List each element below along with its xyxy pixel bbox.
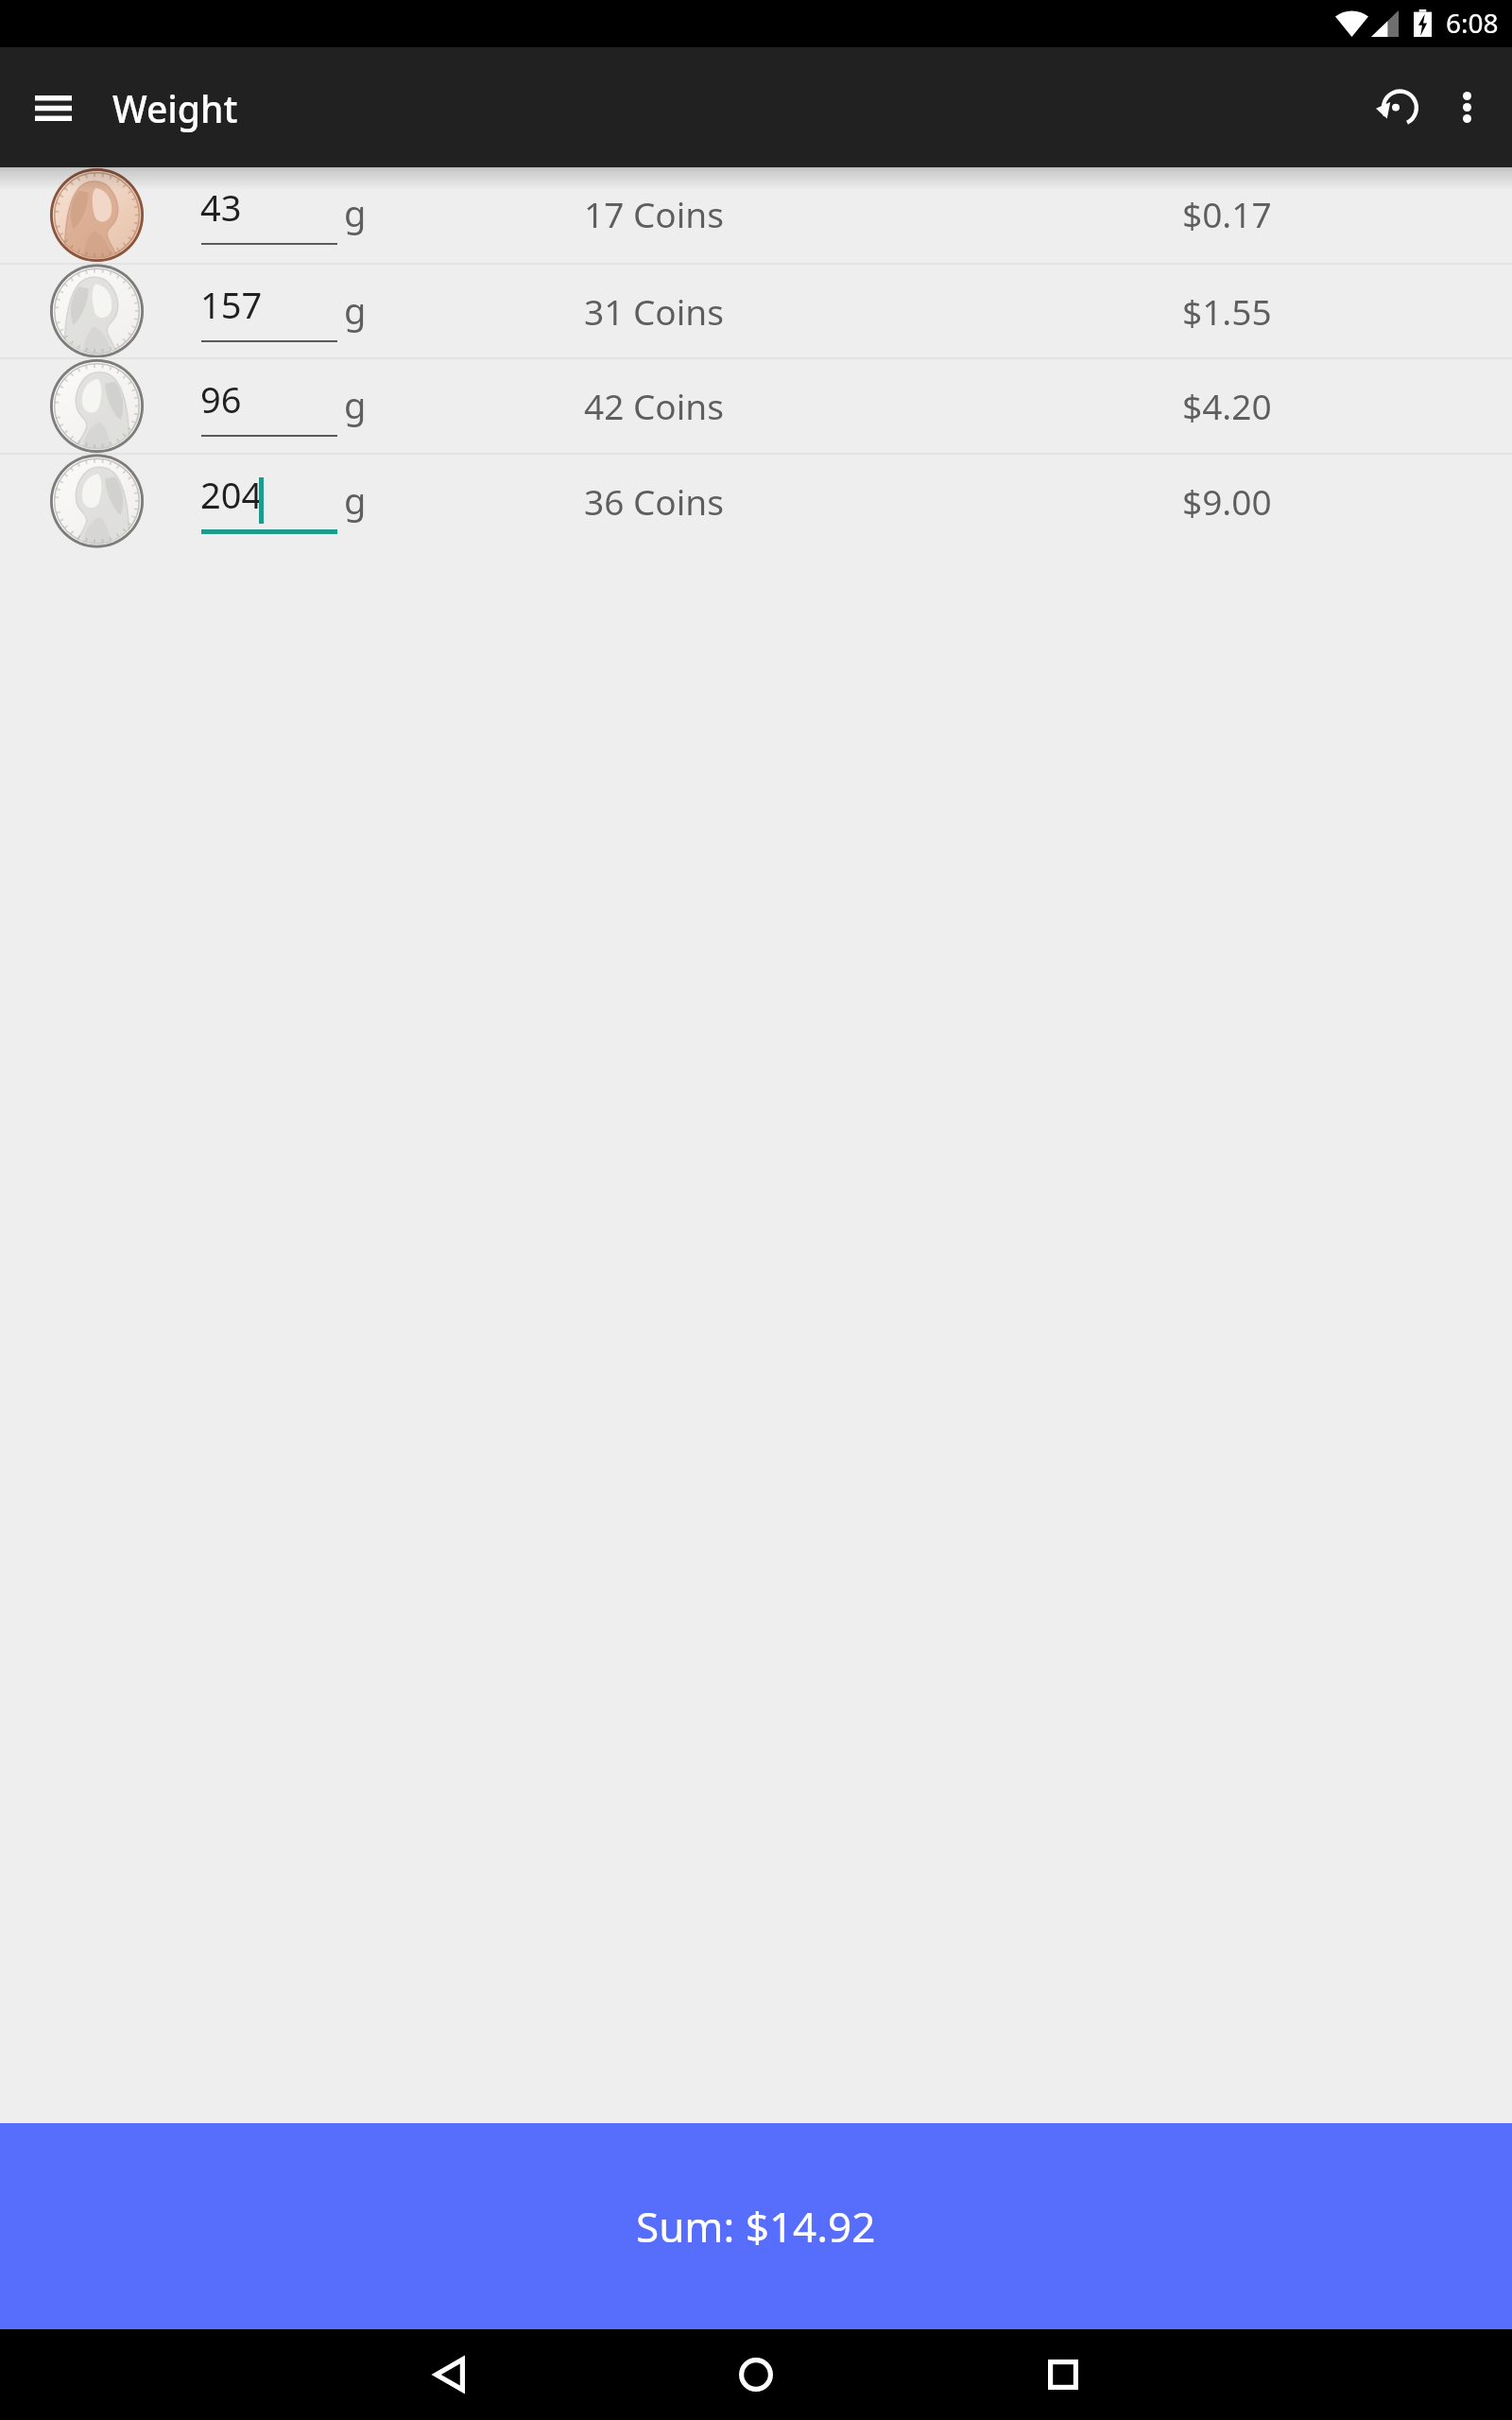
staticText: 204 <box>200 470 263 519</box>
staticText: $9.00 <box>1182 477 1272 525</box>
staticText: g <box>344 475 367 525</box>
staticText: 36 Coins <box>584 477 724 525</box>
staticText: g <box>344 188 367 237</box>
button[interactable]: 204 <box>0 455 1512 547</box>
staticText: 42 Coins <box>584 382 724 429</box>
staticText: 96 <box>200 374 242 423</box>
staticText: g <box>344 285 367 335</box>
button[interactable]: Sum: $14.92 <box>0 2123 1512 2329</box>
button[interactable]: Back <box>397 2329 501 2420</box>
button[interactable]: Recent apps <box>1011 2329 1115 2420</box>
button[interactable]: More options <box>1421 61 1512 153</box>
staticText: 157 <box>200 280 263 329</box>
button[interactable]: 157 <box>0 265 1512 357</box>
staticText: Sum: $14.92 <box>636 2198 876 2255</box>
staticText: 43 <box>200 182 242 232</box>
button[interactable]: Home <box>704 2329 808 2420</box>
staticText: $0.17 <box>1182 190 1272 237</box>
staticText: 31 Coins <box>584 287 724 335</box>
staticText: 6:08 <box>1446 5 1499 41</box>
staticText: $1.55 <box>1182 287 1272 335</box>
button[interactable]: Navigation menu <box>8 62 98 153</box>
staticText: g <box>344 380 367 429</box>
staticText: $4.20 <box>1182 382 1272 429</box>
button[interactable]: 96 <box>0 359 1512 453</box>
staticText: Weight <box>112 83 238 133</box>
staticText: 17 Coins <box>584 190 724 237</box>
button[interactable]: Restore <box>1350 61 1442 153</box>
button[interactable]: 43 <box>0 167 1512 263</box>
